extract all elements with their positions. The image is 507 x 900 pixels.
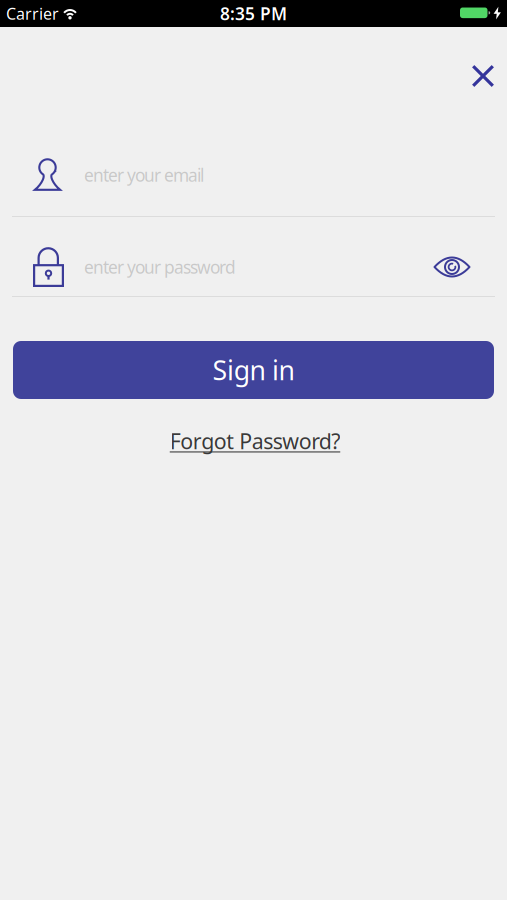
button[interactable]: Sign in [13,341,494,399]
staticText: Forgot Password? [170,427,340,455]
button[interactable] [463,56,503,96]
staticText: Sign in [212,352,295,388]
button[interactable]: Forgot Password? [170,427,340,455]
button[interactable] [428,247,476,287]
staticText: enter your password [84,255,236,278]
staticText: enter your email [84,163,204,186]
staticText: Carrier [6,3,59,24]
button[interactable]: enter your password [12,237,495,297]
staticText: 8:35 PM [220,2,287,25]
button[interactable]: enter your email [12,145,495,205]
